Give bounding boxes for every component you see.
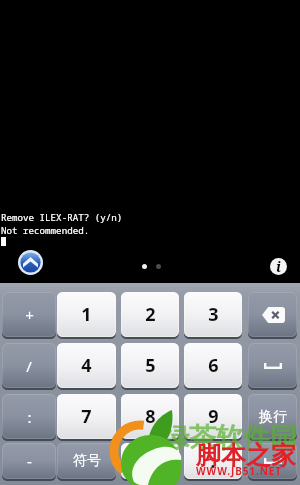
staticText: Remove ILEX-RAT? (y/n) xyxy=(1,211,123,224)
staticText: i xyxy=(276,258,281,274)
button[interactable]: 8 xyxy=(121,394,179,439)
staticText: 换行 xyxy=(259,408,287,426)
button[interactable]: Scroll up xyxy=(18,250,43,275)
button[interactable]: 2 xyxy=(121,292,179,337)
button[interactable]: Space xyxy=(248,343,297,388)
staticText: 2 xyxy=(145,302,156,327)
staticText: 0 xyxy=(145,449,156,474)
staticText: Not recommended. xyxy=(1,224,90,237)
button[interactable]: 3 xyxy=(184,292,242,337)
staticText: 脚本之家 xyxy=(196,440,296,471)
button[interactable]: / xyxy=(2,343,56,388)
button[interactable]: + xyxy=(2,292,56,337)
button[interactable]: 9 xyxy=(184,394,242,439)
button[interactable]: 6 xyxy=(184,343,242,388)
staticText: 6 xyxy=(208,353,219,378)
staticText: 1 xyxy=(81,302,92,327)
button[interactable]: 1 xyxy=(57,292,116,337)
staticText: 3 xyxy=(208,302,219,327)
button[interactable]: 0 xyxy=(121,443,179,479)
staticText: 7 xyxy=(81,404,92,429)
button[interactable]: : xyxy=(2,394,56,439)
staticText: . xyxy=(210,449,216,474)
staticText: WWW.JB51.NET xyxy=(196,464,282,478)
staticText: 4 xyxy=(81,353,92,378)
button[interactable]: . xyxy=(184,443,242,479)
staticText: 8 xyxy=(145,404,156,429)
staticText: + xyxy=(25,305,34,325)
button[interactable]: 7 xyxy=(57,394,116,439)
staticText: 9 xyxy=(208,404,219,429)
staticText: : xyxy=(27,407,32,427)
button[interactable]: 符号 xyxy=(57,443,116,479)
button[interactable]: Backspace xyxy=(248,292,297,337)
staticText: 绿茶软件园 xyxy=(162,421,297,455)
button[interactable]: Info xyxy=(270,258,287,275)
button[interactable]: - xyxy=(2,443,56,479)
staticText: - xyxy=(27,451,32,471)
staticText: / xyxy=(26,356,32,376)
button[interactable]: 5 xyxy=(121,343,179,388)
button[interactable]: Space xyxy=(248,443,297,479)
staticText: 符号 xyxy=(73,452,101,470)
staticText: 5 xyxy=(145,353,156,378)
button[interactable]: 4 xyxy=(57,343,116,388)
button[interactable]: 换行 xyxy=(248,394,297,439)
